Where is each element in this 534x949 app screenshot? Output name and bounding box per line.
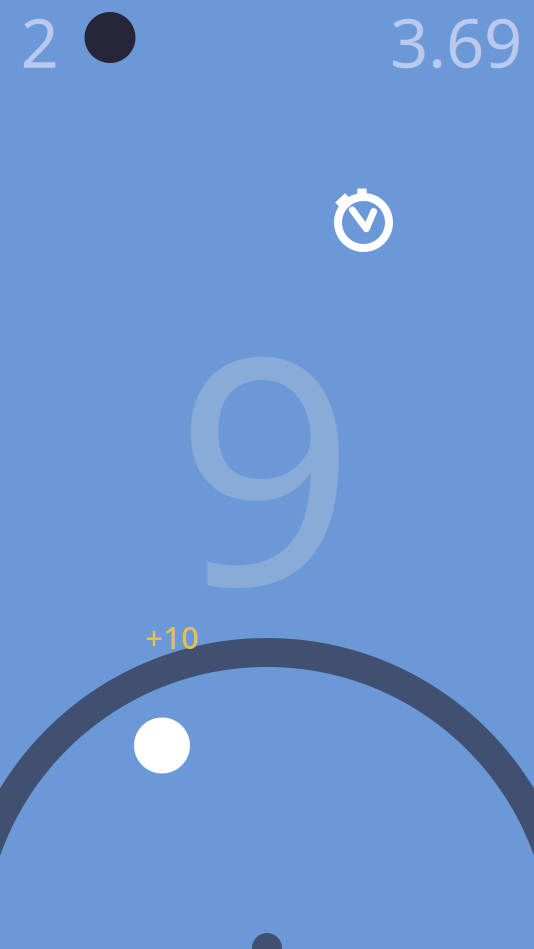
button[interactable]: Tap to jump [0,0,534,949]
staticText: 3.69 [390,0,522,86]
staticText: +10 [145,617,199,657]
staticText: 9 [175,254,355,672]
staticText: 2 [20,0,58,86]
